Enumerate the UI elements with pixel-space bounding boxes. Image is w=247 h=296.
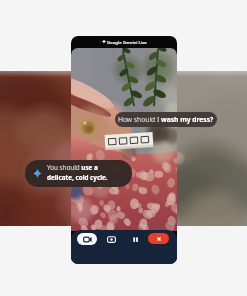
- button[interactable]: How should I wash my dress?: [115, 112, 217, 127]
- staticText: How should I wash my dress?: [118, 115, 214, 124]
- button[interactable]: Share screen: [101, 233, 121, 245]
- button[interactable]: Google Gemini Live: [102, 38, 146, 45]
- staticText: Google Gemini Live: [107, 39, 147, 45]
- button[interactable]: Camera: [77, 233, 97, 245]
- button[interactable]: Pause: [125, 233, 145, 245]
- button[interactable]: End call: [148, 233, 169, 244]
- button[interactable]: You should use a delicate, cold cycle.: [25, 160, 132, 187]
- staticText: You should use a delicate, cold cycle.: [47, 163, 108, 181]
